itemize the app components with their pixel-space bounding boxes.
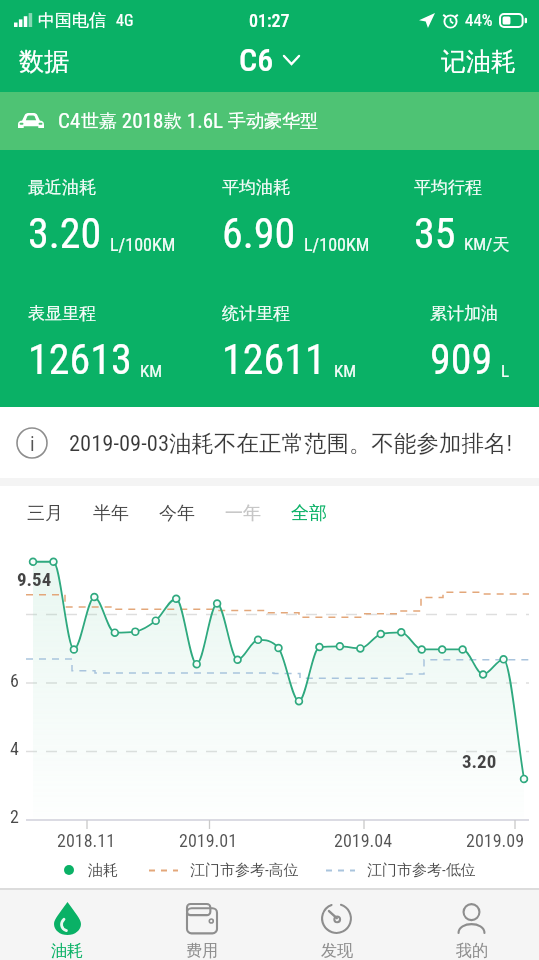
button[interactable]: 数据	[0, 34, 89, 86]
staticText: 数据	[19, 46, 69, 74]
staticText: 3.20	[28, 209, 102, 258]
button[interactable]: 我的	[404, 890, 539, 960]
staticText: 款	[164, 110, 182, 133]
button[interactable]: 一年	[210, 492, 276, 535]
staticText: 三月	[27, 502, 63, 525]
button[interactable]: i	[0, 407, 539, 478]
staticText: 4	[10, 738, 19, 759]
button[interactable]: 全部	[276, 492, 342, 535]
staticText: 35	[414, 209, 456, 258]
staticText: 44%	[465, 10, 493, 30]
button[interactable]: 费用	[134, 890, 269, 960]
staticText: 平均油耗	[222, 177, 290, 198]
staticText: 1.6L	[182, 109, 228, 134]
staticText: i	[30, 432, 35, 455]
staticText: L	[501, 361, 510, 381]
staticText: C4	[58, 109, 81, 134]
staticText: 世嘉	[81, 110, 117, 133]
staticText: 费用	[186, 941, 218, 960]
button[interactable]: 记油耗	[421, 34, 539, 86]
staticText: 3.20	[462, 750, 497, 772]
staticText: 平均行程	[414, 177, 482, 198]
staticText: 油耗	[88, 861, 118, 880]
staticText: 6	[10, 670, 19, 691]
staticText: 6.90	[222, 209, 296, 258]
staticText: 2019.01	[179, 830, 238, 851]
staticText: 我的	[456, 941, 488, 960]
staticText: 9.54	[17, 568, 52, 590]
staticText: 半年	[93, 502, 129, 525]
staticText: C6	[239, 41, 274, 79]
button[interactable]: 半年	[78, 492, 144, 535]
staticText: 01:27	[249, 10, 290, 31]
staticText: 2019.09	[466, 830, 525, 851]
staticText: 2018.11	[57, 830, 116, 851]
staticText: 4G	[116, 11, 134, 30]
staticText: 江门市参考-低位	[367, 861, 476, 880]
staticText: 全部	[291, 502, 327, 525]
staticText: KM/天	[464, 234, 510, 255]
staticText: 一年	[225, 502, 261, 525]
staticText: 累计加油	[430, 303, 498, 324]
staticText: 记油耗	[441, 46, 516, 74]
staticText: KM	[140, 361, 163, 381]
button[interactable]: 发现	[269, 890, 404, 960]
staticText: L/100KM	[110, 234, 176, 255]
staticText: 中国电信	[38, 10, 106, 31]
staticText: 2019-09-03油耗不在正常范围。不能参加排名!	[69, 429, 513, 457]
button[interactable]: 今年	[144, 492, 210, 535]
staticText: 今年	[159, 502, 195, 525]
staticText: 2019.04	[334, 830, 393, 851]
staticText: 12613	[28, 335, 132, 384]
staticText: 江门市参考-高位	[190, 861, 299, 880]
staticText: 表显里程	[28, 303, 96, 324]
staticText: 发现	[321, 941, 353, 960]
staticText: 手动豪华型	[228, 110, 318, 133]
button[interactable]: C6	[233, 35, 306, 85]
staticText: 2	[10, 806, 19, 827]
staticText: L/100KM	[304, 234, 370, 255]
staticText: 统计里程	[222, 303, 290, 324]
staticText: 油耗	[51, 941, 83, 960]
staticText: 2018	[117, 109, 164, 134]
button[interactable]: 三月	[12, 492, 78, 535]
staticText: 12611	[222, 335, 326, 384]
staticText: 最近油耗	[28, 177, 96, 198]
staticText: 909	[430, 335, 493, 384]
staticText: KM	[334, 361, 357, 381]
button[interactable]: 油耗	[0, 890, 134, 960]
button[interactable]: C4	[0, 92, 539, 150]
